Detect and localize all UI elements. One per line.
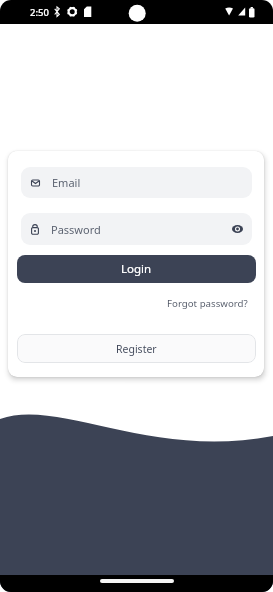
staticText: Login	[121, 261, 152, 277]
staticText: 2:50	[30, 6, 49, 19]
button[interactable]: Password	[21, 213, 252, 245]
staticText: Register	[116, 342, 157, 356]
button[interactable]: Register	[17, 334, 256, 363]
button[interactable]: Forgot password?	[158, 296, 248, 311]
staticText: Email	[52, 175, 81, 190]
button[interactable]	[100, 579, 174, 583]
staticText: Forgot password?	[167, 297, 248, 310]
button[interactable]	[232, 225, 243, 233]
button[interactable]: Login	[17, 255, 256, 283]
staticText: Password	[51, 222, 101, 237]
button[interactable]: Email	[21, 167, 252, 198]
